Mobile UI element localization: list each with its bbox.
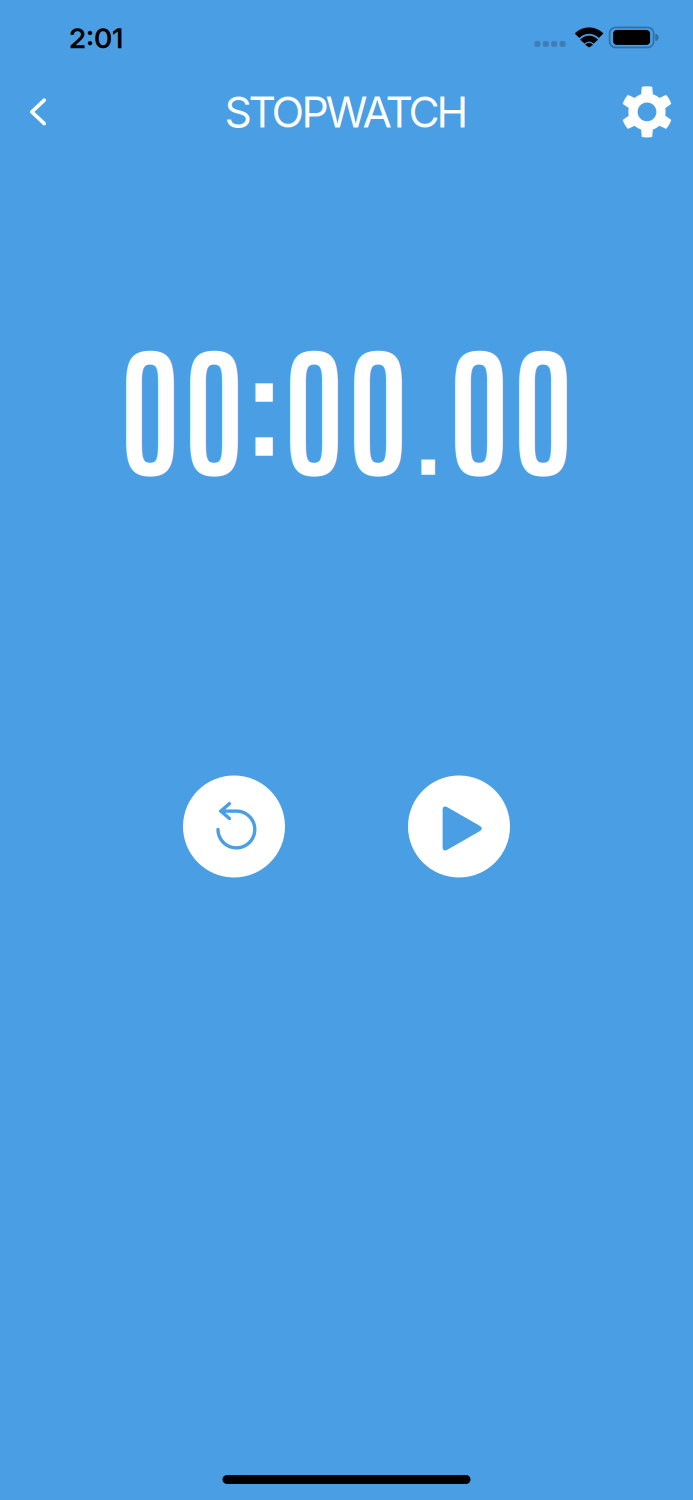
button[interactable]: Settings [618, 83, 676, 141]
button[interactable]: Start [408, 775, 510, 877]
button[interactable]: Back [9, 83, 67, 141]
staticText: 2:01 [69, 21, 123, 55]
button[interactable]: Reset [183, 775, 285, 877]
staticText: STOPWATCH [224, 86, 468, 138]
staticText: 00:00.00 [118, 310, 575, 494]
